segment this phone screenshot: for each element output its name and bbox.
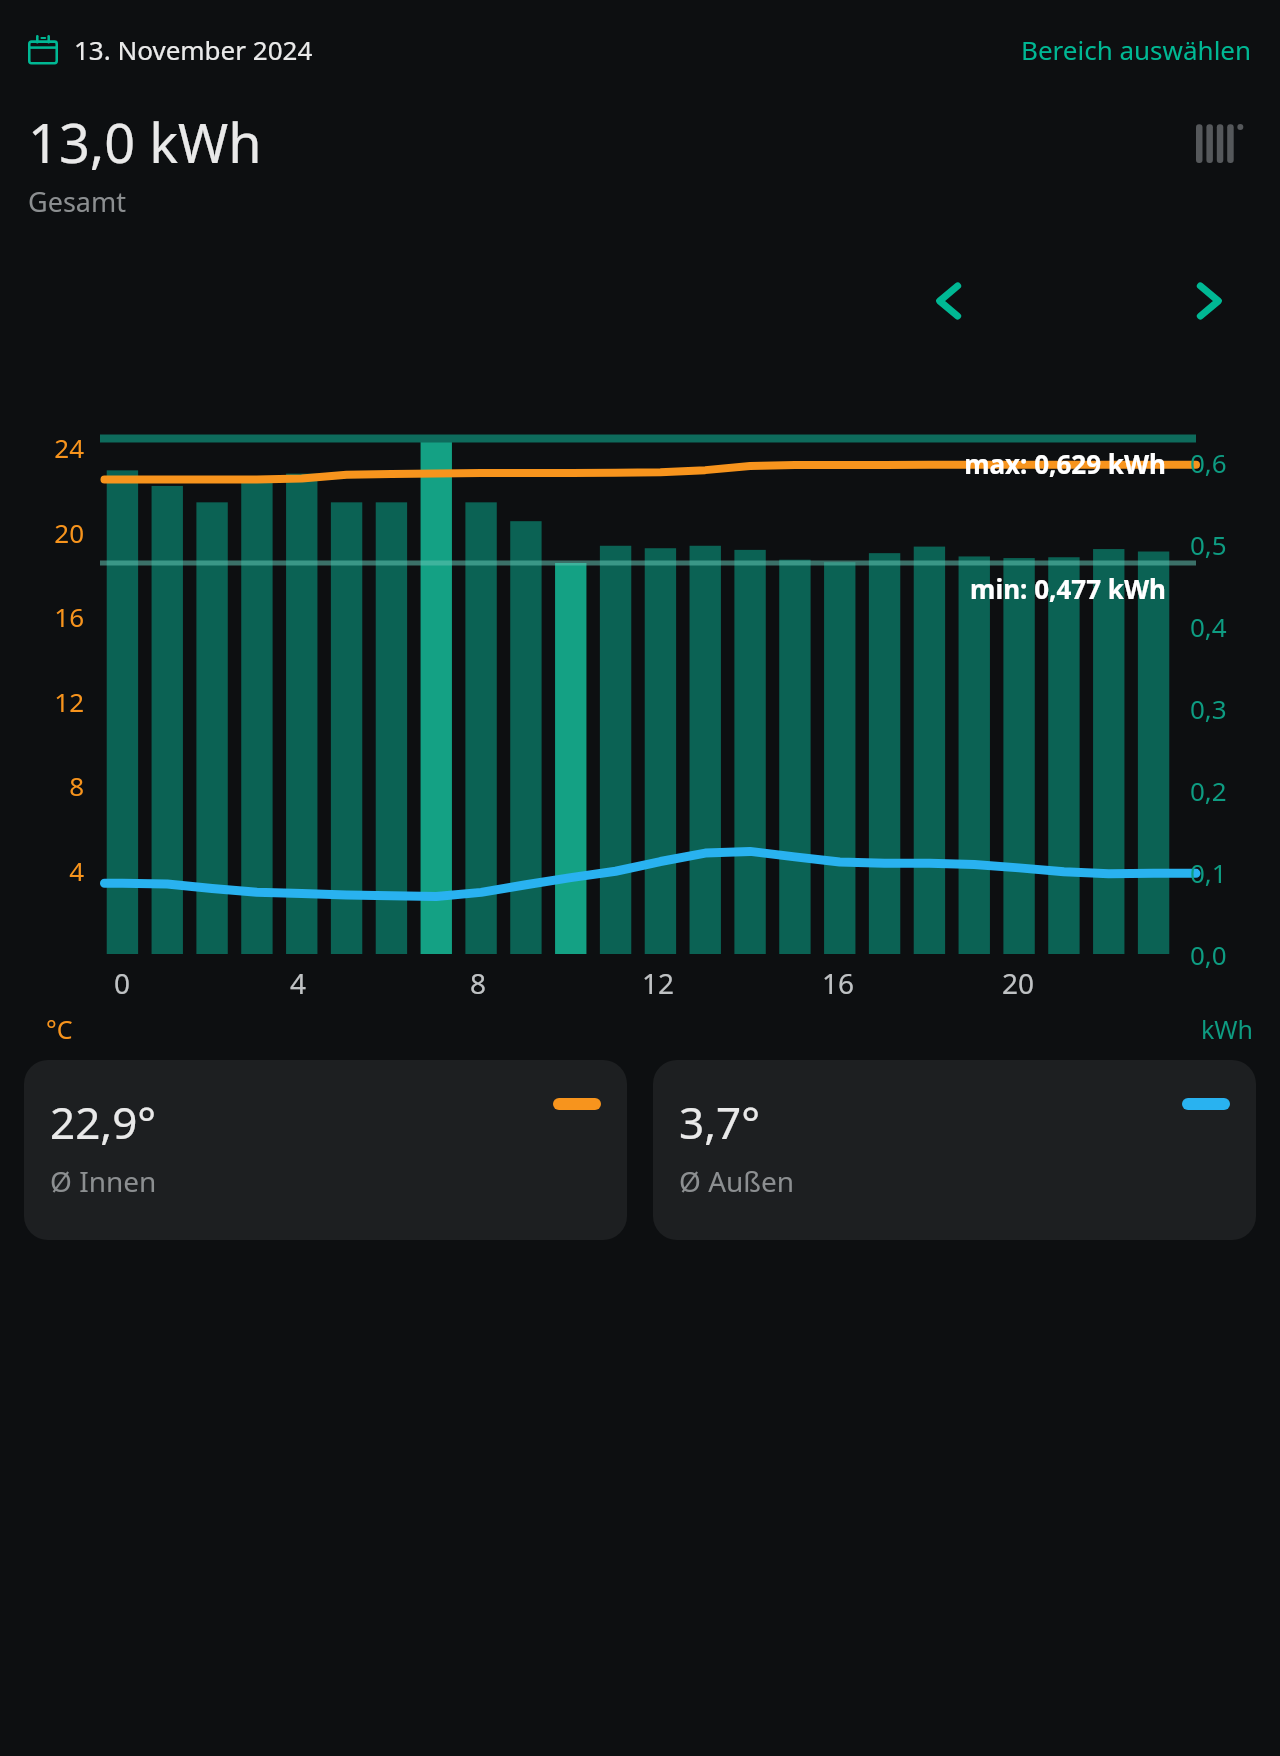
- staticText: 3,7°: [679, 1092, 760, 1152]
- button[interactable]: Heizung: [1196, 119, 1248, 163]
- staticText: 16: [822, 964, 855, 1002]
- staticText: Ø Außen: [679, 1162, 795, 1200]
- staticText: °C: [46, 1012, 73, 1046]
- button[interactable]: Nächster Zeitraum: [1174, 266, 1244, 336]
- staticText: min: 0,477 kWh: [0, 571, 1166, 606]
- staticText: 8: [470, 964, 487, 1002]
- staticText: 8: [0, 768, 84, 803]
- staticText: 20: [1002, 964, 1035, 1002]
- staticText: 12: [642, 964, 675, 1002]
- staticText: Bereich auswählen: [1021, 32, 1252, 67]
- staticText: 0: [114, 964, 131, 1002]
- staticText: max: 0,629 kWh: [0, 446, 1166, 481]
- staticText: 4: [0, 853, 84, 888]
- staticText: 4: [290, 964, 307, 1002]
- button[interactable]: 3,7°: [653, 1060, 1256, 1240]
- staticText: 0,2: [1190, 773, 1280, 808]
- staticText: 12: [0, 684, 84, 719]
- staticText: 13. November 2024: [74, 32, 313, 67]
- staticText: 0,0: [1190, 937, 1280, 972]
- staticText: 0,5: [1190, 527, 1280, 562]
- staticText: 0,3: [1190, 691, 1280, 726]
- staticText: Ø Innen: [50, 1162, 157, 1200]
- staticText: 22,9°: [50, 1092, 157, 1152]
- staticText: 0,6: [1190, 445, 1280, 480]
- staticText: kWh: [1201, 1012, 1254, 1046]
- staticText: 16: [0, 599, 84, 634]
- button[interactable]: Bereich auswählen: [1013, 24, 1260, 75]
- staticText: 0,4: [1190, 609, 1280, 644]
- staticText: 0,1: [1190, 855, 1280, 890]
- staticText: 24: [0, 430, 84, 465]
- staticText: 13,0 kWh: [28, 105, 262, 179]
- button[interactable]: 22,9°: [24, 1060, 627, 1240]
- staticText: Gesamt: [28, 183, 126, 220]
- button[interactable]: 13. November 2024: [22, 26, 319, 73]
- staticText: 20: [0, 515, 84, 550]
- button[interactable]: Vorheriger Zeitraum: [914, 266, 984, 336]
